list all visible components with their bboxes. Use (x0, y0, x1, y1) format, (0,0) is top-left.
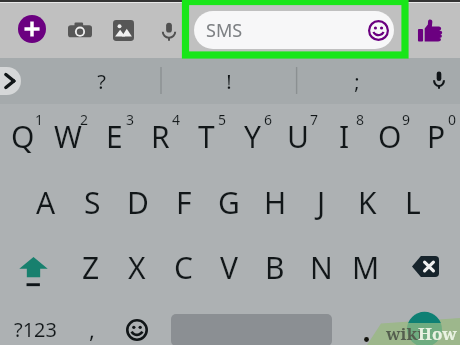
button[interactable]: A (23, 179, 69, 225)
staticText: ; (354, 68, 360, 95)
staticText: E (106, 116, 123, 157)
button[interactable]: Expand toolbar (0, 67, 21, 95)
button[interactable]: Camera (68, 21, 92, 40)
button[interactable]: X (114, 244, 160, 290)
staticText: G (218, 182, 240, 223)
button[interactable]: ; (333, 58, 381, 104)
button[interactable]: ?123 (6, 313, 64, 345)
button[interactable]: D (115, 179, 161, 225)
staticText: U (287, 116, 309, 157)
button[interactable]: G (206, 179, 252, 225)
button[interactable]: L (390, 179, 436, 225)
button[interactable]: S (69, 179, 115, 225)
staticText: W (54, 116, 82, 157)
button[interactable]: Z (68, 244, 114, 290)
staticText: F (176, 182, 192, 223)
button[interactable]: P (413, 113, 459, 159)
button[interactable]: , (74, 313, 110, 345)
staticText: 6 (264, 110, 273, 129)
staticText: P (427, 116, 446, 157)
button[interactable]: H (252, 179, 298, 225)
button[interactable]: Voice message (159, 20, 179, 42)
button[interactable]: Send thumbs up (417, 15, 449, 47)
staticText: ?123 (14, 316, 57, 343)
button[interactable]: N (298, 244, 344, 290)
staticText: 7 (310, 110, 319, 129)
staticText: N (310, 247, 333, 288)
staticText: O (378, 116, 402, 157)
button[interactable]: J (298, 179, 344, 225)
button[interactable]: SMS (194, 11, 394, 49)
staticText: H (264, 182, 287, 223)
staticText: K (358, 182, 377, 223)
staticText: 3 (126, 110, 135, 129)
staticText: How (418, 322, 457, 345)
staticText: 4 (172, 110, 181, 129)
button[interactable]: Y (229, 113, 275, 159)
staticText: 0 (448, 110, 457, 129)
staticText: ! (226, 68, 232, 95)
button[interactable]: Shift (19, 255, 48, 291)
button[interactable]: C (160, 244, 206, 290)
button[interactable]: ! (205, 58, 253, 104)
staticText: Q (11, 116, 35, 157)
button[interactable]: Voice input (431, 69, 447, 90)
button[interactable]: Backspace (412, 256, 439, 277)
staticText: 5 (218, 110, 227, 129)
button[interactable]: T (183, 113, 229, 159)
staticText: I (339, 116, 350, 157)
staticText: wiki (386, 322, 424, 345)
button[interactable]: Emoji (126, 319, 148, 341)
button[interactable]: Q (0, 113, 46, 159)
staticText: ? (97, 68, 106, 95)
staticText: A (36, 182, 56, 223)
staticText: X (128, 247, 146, 288)
button[interactable]: I (321, 113, 367, 159)
button[interactable]: B (252, 244, 298, 290)
staticText: B (265, 247, 285, 288)
staticText: , (89, 314, 95, 344)
button[interactable]: V (206, 244, 252, 290)
staticText: J (317, 182, 326, 223)
staticText: V (220, 247, 238, 288)
button[interactable]: E (91, 113, 137, 159)
button[interactable]: M (343, 244, 389, 290)
staticText: SMS (206, 18, 243, 43)
staticText: Y (244, 116, 261, 157)
staticText: L (405, 182, 421, 223)
button[interactable]: New message (18, 15, 46, 43)
staticText: R (151, 116, 170, 157)
button[interactable]: F (161, 179, 207, 225)
staticText: S (84, 182, 101, 223)
button[interactable]: K (344, 179, 390, 225)
staticText: C (174, 247, 193, 288)
staticText: T (198, 116, 215, 157)
button[interactable]: R (137, 113, 183, 159)
staticText: 9 (402, 110, 411, 129)
staticText: 2 (80, 110, 89, 129)
button[interactable]: U (275, 113, 321, 159)
staticText: Z (82, 247, 100, 288)
button[interactable]: ? (77, 58, 125, 104)
button[interactable]: Gallery (113, 20, 134, 41)
button[interactable]: O (367, 113, 413, 159)
staticText: D (127, 182, 149, 223)
staticText: 8 (356, 110, 365, 129)
staticText: 1 (35, 110, 44, 129)
staticText: M (352, 247, 380, 288)
button[interactable]: W (45, 113, 91, 159)
